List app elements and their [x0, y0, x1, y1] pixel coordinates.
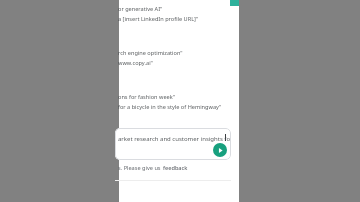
staticText: rch engine optimization"	[118, 49, 183, 57]
button[interactable]: s. Please give us	[119, 164, 239, 172]
button[interactable]: Send	[213, 143, 227, 157]
button[interactable]: or generative AI"	[119, 5, 239, 23]
staticText: s. Please give us	[118, 164, 162, 172]
staticText: www.copy.ai"	[118, 59, 153, 67]
staticText: for a bicycle in the style of Hemingway"	[118, 103, 222, 111]
staticText: ons for fashion week"	[118, 93, 175, 101]
staticText: arket research and customer insights for	[118, 135, 231, 143]
staticText: a [insert LinkedIn profile URL]"	[118, 15, 199, 23]
button[interactable]: arket research and customer insights for	[115, 128, 231, 160]
staticText: feedback	[163, 164, 188, 172]
button[interactable]: ons for fashion week"	[119, 93, 239, 111]
staticText: or generative AI"	[118, 5, 163, 13]
button[interactable]: rch engine optimization"	[119, 49, 239, 67]
